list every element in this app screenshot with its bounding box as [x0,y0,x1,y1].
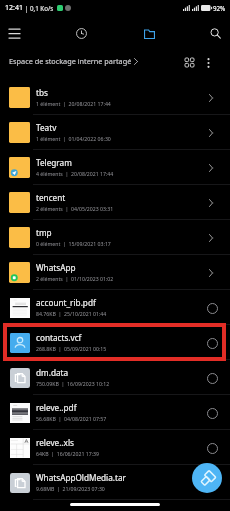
staticText: 750.09KB | 16/09/2023 10:12 [36,380,110,387]
button[interactable]: Teatv [0,115,230,150]
staticText: tbs [36,87,48,98]
button[interactable]: releve..xls [0,430,230,465]
button[interactable]: tmp [0,220,230,255]
button[interactable]: WhatsAppOldMedia.tar [0,465,230,500]
staticText: 2 éléments | 01/10/2023 01:02 [36,275,114,282]
button[interactable]: tbs [0,80,230,115]
staticText: 92% [213,4,226,12]
button[interactable]: WhatsApp [0,255,230,290]
button[interactable]: Grid view [180,53,199,72]
staticText: 64KB | 16/06/2021 17:39 [36,450,99,457]
button[interactable]: Espace de stockage interne partagé [9,56,138,66]
staticText: WhatsApp [36,262,76,273]
staticText: 0 élément | 15/09/2021 03:17 [36,240,111,247]
staticText: 56.68KB | 04/08/2021 07:57 [36,415,107,422]
staticText: WhatsAppOldMedia.tar [36,472,126,483]
staticText: | 0,1 Ko/s [25,4,54,12]
button[interactable]: Telegram [0,150,230,185]
staticText: 2 éléments | 04/05/2023 03:31 [36,205,114,212]
staticText: tencent [36,192,66,203]
button[interactable]: Clean up storage [192,463,222,493]
staticText: Teatv [36,122,57,133]
staticText: 84.76KB | 25/10/2021 01:44 [36,310,107,317]
staticText: 12:41 [5,3,23,13]
staticText: 268.8KB | 05/09/2021 00:15 [36,345,107,352]
staticText: Telegram [36,157,72,168]
button[interactable]: Recent files [70,22,92,44]
staticText: 1 élément | 01/04/2022 06:30 [36,135,111,142]
staticText: account_rib.pdf [36,297,96,308]
button[interactable]: dm.data [0,360,230,395]
staticText: tmp [36,227,52,238]
staticText: dm.data [36,367,69,378]
button[interactable]: Menu [3,22,25,44]
button[interactable]: releve..pdf [0,395,230,430]
staticText: contacts.vcf [36,332,82,343]
staticText: 1 élément | 20/08/2021 17:44 [36,100,111,107]
staticText: releve..pdf [36,402,77,413]
button[interactable]: Search [204,22,226,44]
button[interactable]: tencent [0,185,230,220]
button[interactable]: More options [199,53,218,72]
button[interactable]: Browse files [138,22,160,44]
button[interactable]: contacts.vcf [0,325,230,360]
button[interactable]: account_rib.pdf [0,290,230,325]
staticText: Espace de stockage interne partagé [9,56,132,66]
staticText: 4 éléments | 20/08/2021 17:44 [36,170,114,177]
staticText: 9.68MB | 21/09/2023 07:30 [36,485,105,492]
staticText: releve..xls [36,437,74,448]
